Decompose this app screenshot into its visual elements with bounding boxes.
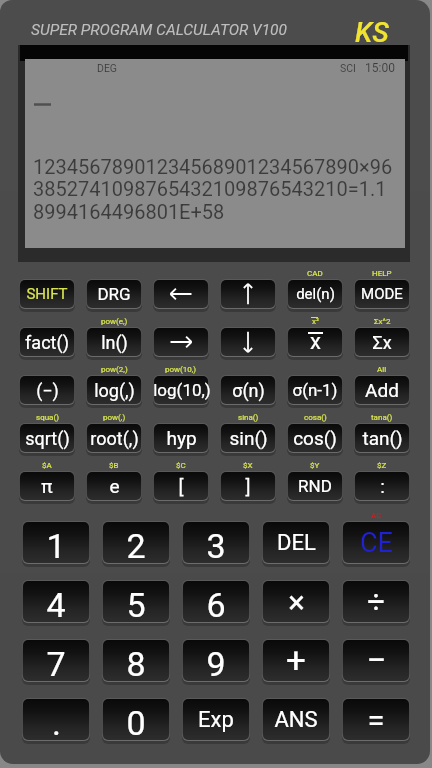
staticText: SHIFT bbox=[26, 285, 68, 303]
button[interactable]: ÷ bbox=[342, 580, 410, 626]
staticText: pow(,) bbox=[103, 413, 126, 422]
button[interactable]: 4 bbox=[22, 580, 90, 626]
button[interactable]: 9 bbox=[182, 639, 250, 685]
staticText: 3 bbox=[206, 526, 226, 566]
staticText: Σx^2 bbox=[374, 317, 391, 326]
button[interactable]: Add bbox=[354, 375, 410, 408]
button[interactable]: × bbox=[262, 580, 330, 626]
button[interactable]: tan() bbox=[354, 423, 410, 456]
staticText: 2 bbox=[126, 526, 146, 566]
staticText: π bbox=[41, 475, 53, 497]
button[interactable]: root(,) bbox=[86, 423, 142, 456]
staticText: log(,) bbox=[94, 380, 135, 401]
staticText: MODE bbox=[361, 285, 403, 303]
staticText: cosa() bbox=[304, 413, 327, 422]
button[interactable]: ln() bbox=[86, 327, 142, 360]
staticText: ÷ bbox=[367, 584, 385, 620]
staticText: σ(n) bbox=[232, 380, 265, 401]
staticText: Add bbox=[365, 379, 399, 401]
button[interactable]: 8 bbox=[102, 639, 170, 685]
staticText: CE bbox=[360, 527, 393, 559]
button[interactable]: Left bbox=[153, 279, 209, 312]
staticText: 12345678901234568901234567890×9638527410… bbox=[33, 155, 393, 224]
staticText: ] bbox=[245, 475, 251, 497]
button[interactable]: Up bbox=[220, 279, 276, 312]
button[interactable]: CE bbox=[342, 521, 410, 567]
button[interactable]: [ bbox=[153, 471, 209, 504]
button[interactable]: 0 bbox=[102, 698, 170, 744]
staticText: tan() bbox=[362, 427, 403, 449]
staticText: pow(e,) bbox=[101, 317, 128, 326]
staticText: + bbox=[286, 640, 306, 681]
staticText: 9 bbox=[206, 644, 226, 684]
button[interactable]: SHIFT bbox=[19, 279, 75, 312]
button[interactable]: Right bbox=[153, 327, 209, 360]
button[interactable]: log(10,) bbox=[153, 375, 209, 408]
button[interactable]: hyp bbox=[153, 423, 209, 456]
staticText: HELP bbox=[372, 269, 392, 278]
button[interactable]: 7 bbox=[22, 639, 90, 685]
button[interactable]: 3 bbox=[182, 521, 250, 567]
button[interactable]: log(,) bbox=[86, 375, 142, 408]
button[interactable]: 1 bbox=[22, 521, 90, 567]
staticText: tana() bbox=[371, 413, 393, 422]
staticText: $B bbox=[109, 461, 119, 470]
staticText: x² bbox=[312, 317, 319, 326]
staticText: − bbox=[366, 640, 387, 681]
button[interactable]: . bbox=[22, 698, 90, 744]
button[interactable]: 2 bbox=[102, 521, 170, 567]
button[interactable]: sin() bbox=[220, 423, 276, 456]
button[interactable]: Σx bbox=[354, 327, 410, 360]
staticText: : bbox=[380, 475, 385, 497]
button[interactable]: x bbox=[287, 327, 343, 360]
staticText: sin() bbox=[229, 427, 268, 449]
staticText: RND bbox=[298, 476, 332, 496]
button[interactable]: = bbox=[342, 698, 410, 744]
staticText: . bbox=[52, 703, 61, 743]
button[interactable]: : bbox=[354, 471, 410, 504]
button[interactable]: sqrt() bbox=[19, 423, 75, 456]
button[interactable]: σ(n) bbox=[220, 375, 276, 408]
button[interactable]: − bbox=[342, 639, 410, 685]
button[interactable]: Down bbox=[220, 327, 276, 360]
staticText: 4 bbox=[46, 585, 66, 625]
staticText: 1 bbox=[46, 526, 66, 566]
button[interactable]: + bbox=[262, 639, 330, 685]
button[interactable]: (−) bbox=[19, 375, 75, 408]
button[interactable]: ] bbox=[220, 471, 276, 504]
button[interactable]: DRG bbox=[86, 279, 142, 312]
staticText: DEL bbox=[277, 530, 316, 556]
button[interactable]: cos() bbox=[287, 423, 343, 456]
staticText: DRG bbox=[97, 284, 131, 304]
staticText: root(,) bbox=[90, 428, 139, 449]
button[interactable]: DEL bbox=[262, 521, 330, 567]
button[interactable]: 5 bbox=[102, 580, 170, 626]
staticText: ANS bbox=[274, 707, 318, 733]
button[interactable]: e bbox=[86, 471, 142, 504]
staticText: [ bbox=[178, 475, 184, 497]
staticText: 8 bbox=[126, 644, 146, 684]
button[interactable]: del(n) bbox=[287, 279, 343, 312]
staticText: SUPER PROGRAM CALCULATOR V100 bbox=[31, 21, 288, 39]
button[interactable]: RND bbox=[287, 471, 343, 504]
staticText: squa() bbox=[36, 413, 59, 422]
staticText: SCI bbox=[340, 62, 356, 74]
button[interactable]: ANS bbox=[262, 698, 330, 744]
button[interactable]: MODE bbox=[354, 279, 410, 312]
staticText: $A bbox=[42, 461, 52, 470]
staticText: All bbox=[377, 365, 387, 374]
button[interactable]: π bbox=[19, 471, 75, 504]
staticText: cos() bbox=[293, 427, 337, 449]
staticText: 6 bbox=[206, 585, 226, 625]
button[interactable]: σ(n-1) bbox=[287, 375, 343, 408]
staticText: CAD bbox=[307, 269, 323, 278]
staticText: fact() bbox=[25, 332, 69, 353]
staticText: Exp bbox=[198, 707, 234, 733]
staticText: $Y bbox=[310, 461, 320, 470]
button[interactable]: 6 bbox=[182, 580, 250, 626]
button[interactable]: fact() bbox=[19, 327, 75, 360]
button[interactable]: Exp bbox=[182, 698, 250, 744]
staticText: hyp bbox=[166, 427, 197, 449]
staticText: $C bbox=[176, 461, 186, 470]
staticText: log(10,) bbox=[153, 380, 209, 400]
